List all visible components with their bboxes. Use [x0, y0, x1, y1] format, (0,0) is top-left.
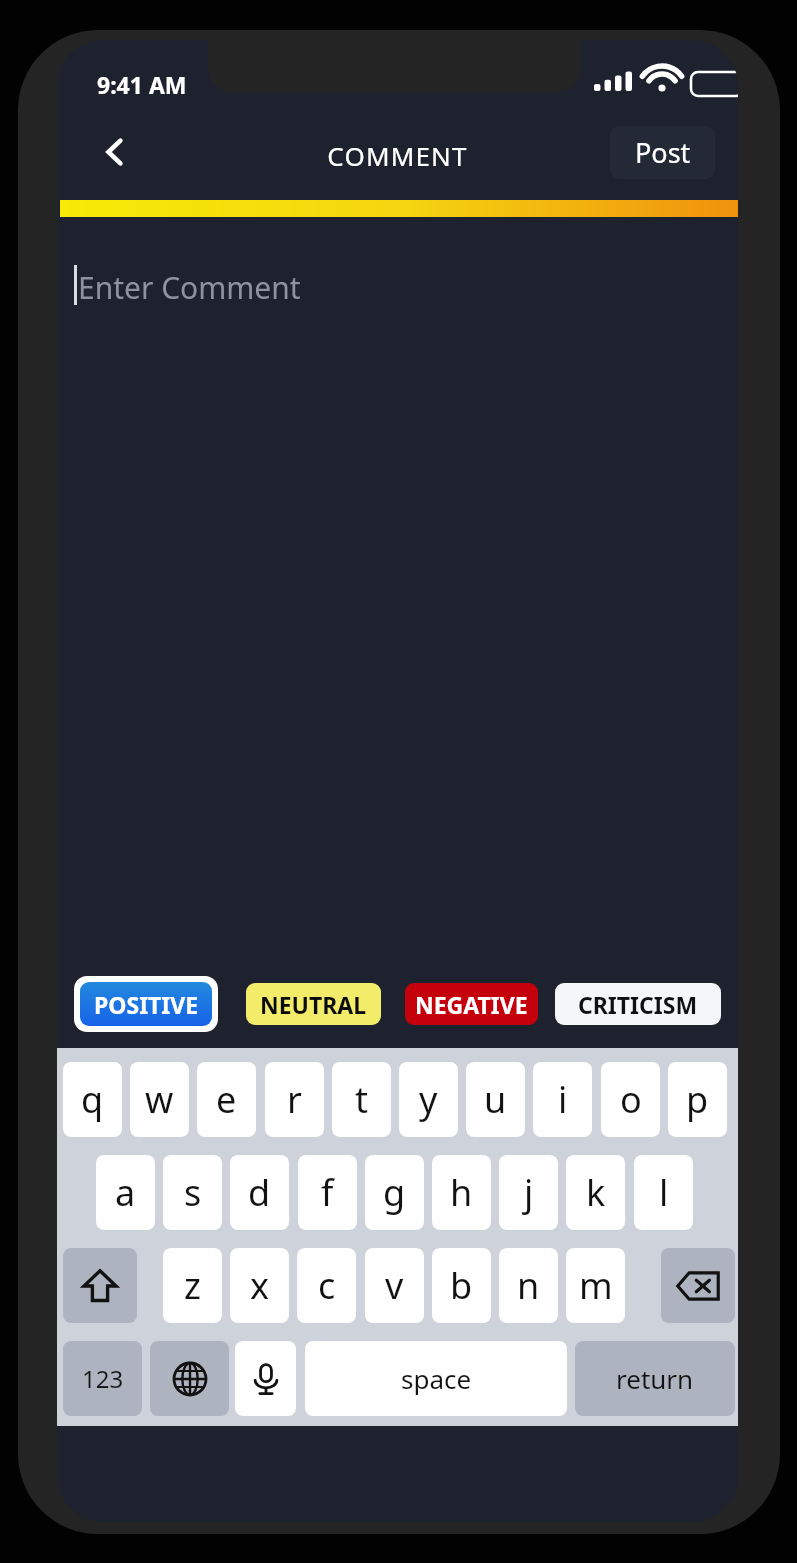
staticText: z	[184, 1261, 201, 1310]
staticText: a	[115, 1168, 136, 1217]
staticText: return	[616, 1361, 694, 1396]
staticText: j	[524, 1168, 534, 1217]
staticText: o	[620, 1075, 642, 1124]
button[interactable]: Dictate	[235, 1341, 296, 1416]
button[interactable]: n	[499, 1248, 558, 1323]
staticText: f	[321, 1168, 334, 1217]
staticText: s	[184, 1168, 202, 1217]
staticText: space	[401, 1361, 472, 1396]
staticText: l	[659, 1168, 669, 1217]
staticText: d	[248, 1168, 271, 1217]
staticText: r	[287, 1075, 302, 1124]
button[interactable]: j	[499, 1155, 558, 1230]
button[interactable]: o	[601, 1062, 660, 1137]
staticText: v	[385, 1261, 404, 1310]
button[interactable]: g	[365, 1155, 424, 1230]
button[interactable]: u	[466, 1062, 525, 1137]
staticText: x	[250, 1261, 270, 1310]
button[interactable]: q	[63, 1062, 122, 1137]
staticText: y	[419, 1075, 438, 1124]
staticText: NEGATIVE	[415, 989, 528, 1020]
button[interactable]: Back	[83, 120, 147, 184]
button[interactable]: d	[230, 1155, 289, 1230]
button[interactable]: Switch keyboard	[150, 1341, 229, 1416]
button[interactable]: return	[575, 1341, 735, 1416]
other: Backspace	[676, 1264, 720, 1308]
staticText: Enter Comment	[78, 267, 301, 308]
button[interactable]: y	[399, 1062, 458, 1137]
button[interactable]: m	[566, 1248, 625, 1323]
button[interactable]: v	[365, 1248, 424, 1323]
other: Shift	[81, 1267, 119, 1305]
button[interactable]: e	[197, 1062, 256, 1137]
staticText: e	[216, 1075, 237, 1124]
staticText: Post	[635, 134, 691, 171]
button[interactable]: Enter Comment	[57, 217, 738, 962]
button[interactable]: z	[163, 1248, 222, 1323]
staticText: m	[579, 1261, 613, 1310]
other: Switch keyboard	[172, 1361, 208, 1397]
button[interactable]: w	[130, 1062, 189, 1137]
button[interactable]: NEGATIVE	[405, 983, 538, 1025]
staticText: 9:41 AM	[97, 69, 187, 100]
staticText: n	[517, 1261, 540, 1310]
button[interactable]: CRITICISM	[555, 983, 721, 1025]
button[interactable]: c	[297, 1248, 356, 1323]
button[interactable]: x	[230, 1248, 289, 1323]
button[interactable]: space	[305, 1341, 567, 1416]
staticText: CRITICISM	[578, 989, 698, 1020]
button[interactable]: a	[96, 1155, 155, 1230]
staticText: NEUTRAL	[260, 989, 367, 1020]
button[interactable]: 123	[63, 1341, 142, 1416]
staticText: c	[318, 1261, 336, 1310]
button[interactable]: s	[163, 1155, 222, 1230]
staticText: w	[145, 1075, 174, 1124]
staticText: COMMENT	[57, 138, 738, 173]
button[interactable]: Backspace	[661, 1248, 735, 1323]
staticText: t	[355, 1075, 368, 1124]
button[interactable]: h	[432, 1155, 491, 1230]
staticText: 123	[82, 1362, 124, 1395]
button[interactable]: NEUTRAL	[246, 983, 381, 1025]
button[interactable]: i	[533, 1062, 592, 1137]
staticText: POSITIVE	[94, 989, 199, 1020]
staticText: h	[450, 1168, 473, 1217]
button[interactable]: b	[432, 1248, 491, 1323]
button[interactable]: p	[668, 1062, 727, 1137]
staticText: k	[586, 1168, 606, 1217]
staticText: u	[484, 1075, 507, 1124]
staticText: p	[686, 1075, 709, 1124]
staticText: g	[383, 1168, 406, 1217]
button[interactable]: l	[634, 1155, 693, 1230]
button[interactable]: t	[332, 1062, 391, 1137]
staticText: i	[558, 1075, 568, 1124]
staticText: b	[450, 1261, 473, 1310]
button[interactable]: f	[298, 1155, 357, 1230]
staticText: q	[81, 1075, 104, 1124]
button[interactable]: Shift	[63, 1248, 137, 1323]
button[interactable]: r	[265, 1062, 324, 1137]
button[interactable]: POSITIVE	[74, 976, 218, 1032]
button[interactable]: k	[566, 1155, 625, 1230]
button[interactable]: Post	[610, 126, 715, 179]
